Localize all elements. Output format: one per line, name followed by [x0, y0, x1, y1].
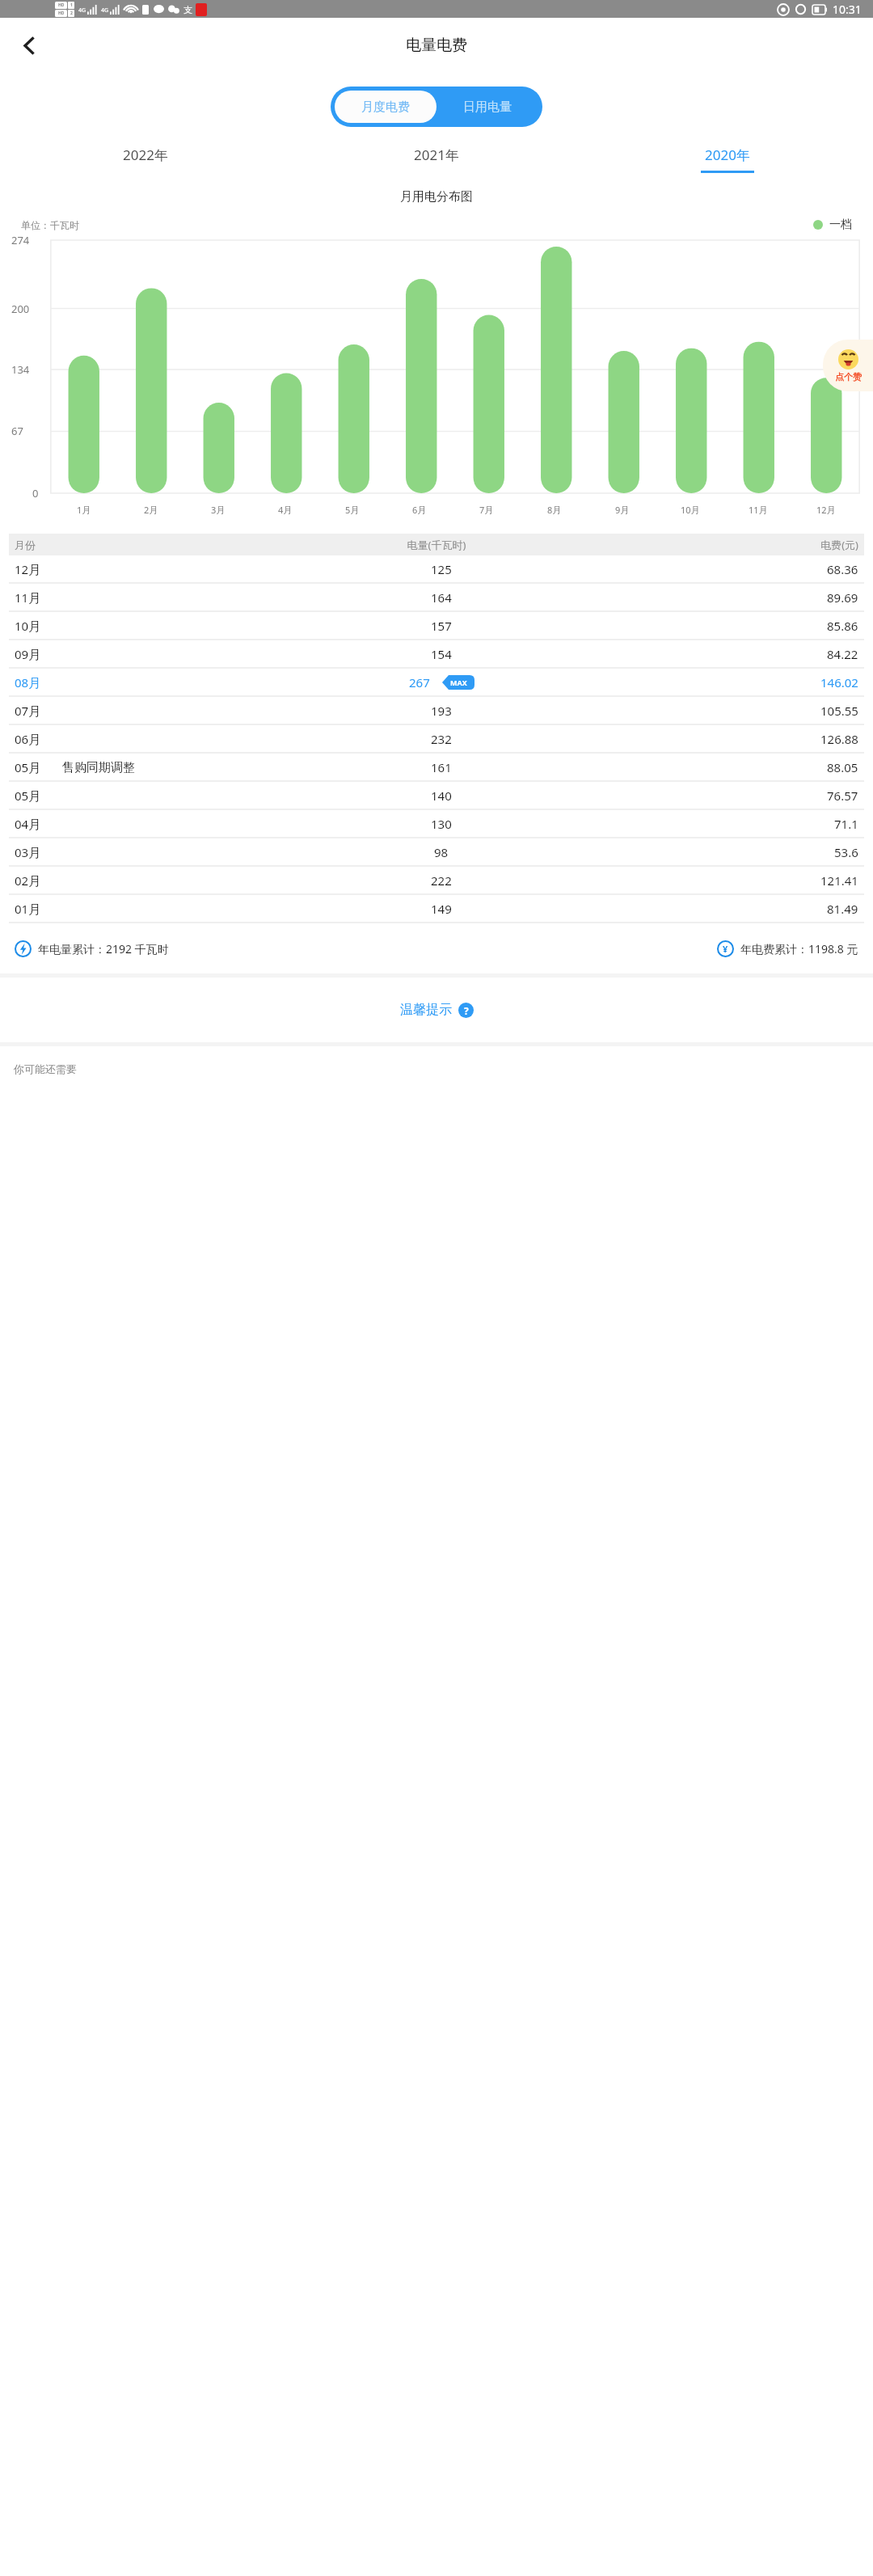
- button[interactable]: 09月: [0, 640, 873, 669]
- staticText: 9月: [615, 504, 630, 516]
- staticText: 5月: [345, 504, 360, 516]
- staticText: 0: [32, 486, 39, 500]
- staticText: 125: [431, 561, 452, 577]
- staticText: 232: [431, 731, 452, 747]
- staticText: ¥: [723, 943, 728, 955]
- staticText: 03月: [15, 844, 41, 860]
- staticText: 134: [11, 362, 30, 377]
- button[interactable]: 02月: [0, 867, 873, 895]
- staticText: 121.41: [820, 872, 858, 889]
- staticText: 04月: [15, 816, 41, 832]
- staticText: 2月: [144, 504, 158, 516]
- staticText: 2020年: [705, 146, 750, 164]
- staticText: 1月: [77, 504, 91, 516]
- staticText: 1: [70, 2, 73, 8]
- button[interactable]: 07月: [0, 697, 873, 725]
- staticText: 130: [431, 816, 452, 832]
- staticText: 76.57: [827, 788, 858, 804]
- staticText: 05月: [15, 759, 41, 775]
- staticText: 81.49: [827, 901, 858, 917]
- staticText: 98: [434, 844, 449, 860]
- staticText: 月度电费: [361, 99, 410, 115]
- staticText: 161: [431, 759, 452, 775]
- button[interactable]: 03月: [0, 838, 873, 867]
- staticText: 电量(千瓦时): [278, 538, 595, 552]
- staticText: 月份: [15, 538, 278, 551]
- button[interactable]: 05月: [0, 782, 873, 810]
- staticText: 89.69: [827, 589, 858, 606]
- staticText: 一档: [829, 217, 852, 232]
- staticText: 年电量累计：2192 千瓦时: [38, 941, 169, 956]
- staticText: 10月: [681, 504, 700, 516]
- staticText: 267: [409, 674, 430, 690]
- staticText: 274: [11, 233, 30, 247]
- button[interactable]: 11月: [0, 584, 873, 612]
- button[interactable]: 01月: [0, 895, 873, 923]
- staticText: 12月: [816, 504, 836, 516]
- button[interactable]: 点个赞: [823, 340, 873, 391]
- staticText: 11月: [15, 589, 41, 606]
- button[interactable]: 温馨提示: [0, 978, 873, 1042]
- staticText: 157: [431, 618, 452, 634]
- staticText: 点个赞: [835, 371, 862, 382]
- staticText: 6月: [412, 504, 427, 516]
- staticText: 2021年: [414, 146, 459, 164]
- staticText: 200: [11, 302, 30, 316]
- staticText: 8月: [547, 504, 562, 516]
- staticText: 电量电费: [406, 36, 467, 55]
- staticText: 222: [431, 872, 452, 889]
- button[interactable]: 2020年: [582, 146, 873, 173]
- staticText: 2022年: [123, 146, 168, 164]
- button[interactable]: Back: [6, 23, 52, 68]
- staticText: 68.36: [827, 561, 858, 577]
- staticText: 年电费累计：1198.8 元: [740, 941, 858, 956]
- staticText: 日用电量: [463, 99, 512, 115]
- staticText: 电费(元): [595, 538, 858, 552]
- staticText: 140: [431, 788, 452, 804]
- staticText: HD: [58, 2, 65, 8]
- button[interactable]: 2022年: [0, 146, 291, 173]
- staticText: 你可能还需要: [14, 1062, 77, 1075]
- staticText: 4G: [101, 6, 109, 15]
- staticText: 温馨提示: [400, 1002, 452, 1018]
- staticText: 84.22: [827, 646, 858, 662]
- staticText: 02月: [15, 872, 41, 889]
- staticText: 08月: [15, 674, 41, 690]
- staticText: 2: [70, 11, 73, 16]
- button[interactable]: 05月: [0, 754, 873, 782]
- staticText: MAX: [450, 678, 467, 687]
- staticText: 01月: [15, 901, 41, 917]
- button[interactable]: 月度电费: [335, 91, 436, 123]
- staticText: 154: [431, 646, 452, 662]
- staticText: 85.86: [827, 618, 858, 634]
- button[interactable]: 06月: [0, 725, 873, 754]
- staticText: 105.55: [820, 703, 858, 719]
- staticText: 3月: [211, 504, 226, 516]
- staticText: 12月: [15, 561, 41, 577]
- staticText: 71.1: [834, 816, 858, 832]
- staticText: 10:31: [833, 2, 862, 17]
- staticText: 7月: [479, 504, 494, 516]
- staticText: 149: [431, 901, 452, 917]
- staticText: 126.88: [820, 731, 858, 747]
- staticText: 05月: [15, 788, 41, 804]
- staticText: 支: [183, 4, 192, 15]
- button[interactable]: 2021年: [291, 146, 582, 173]
- staticText: 4月: [278, 504, 293, 516]
- button[interactable]: 08月: [0, 669, 873, 697]
- button[interactable]: 日用电量: [436, 91, 538, 123]
- staticText: 88.05: [827, 759, 858, 775]
- button[interactable]: 12月: [0, 555, 873, 584]
- staticText: 4G: [78, 6, 86, 15]
- staticText: ?: [464, 1004, 469, 1017]
- button[interactable]: 04月: [0, 810, 873, 838]
- staticText: 146.02: [820, 674, 858, 690]
- staticText: 09月: [15, 646, 41, 662]
- button[interactable]: 10月: [0, 612, 873, 640]
- staticText: 164: [431, 589, 452, 606]
- staticText: HD: [58, 11, 65, 16]
- staticText: 售购同期调整: [62, 760, 135, 775]
- staticText: 67: [11, 424, 23, 438]
- staticText: 单位：千瓦时: [21, 219, 79, 231]
- staticText: 53.6: [834, 844, 858, 860]
